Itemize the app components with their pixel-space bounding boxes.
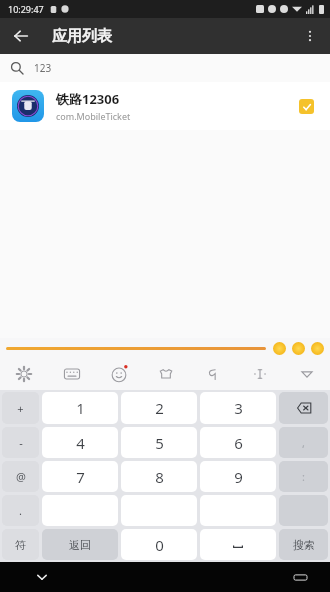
staticText: 0 xyxy=(155,535,164,555)
staticText: , xyxy=(302,435,305,450)
button[interactable]: 3 xyxy=(200,392,276,424)
staticText: com.MobileTicket xyxy=(56,110,131,122)
staticText: 10:29:47 xyxy=(8,3,44,15)
staticText: 9 xyxy=(234,467,243,487)
staticText: + xyxy=(17,401,24,416)
button[interactable]: Suggestion xyxy=(311,342,324,355)
button[interactable]: Selected xyxy=(294,94,318,118)
button[interactable]: Back xyxy=(6,21,36,51)
button[interactable]: . xyxy=(2,495,39,526)
button[interactable]: Space xyxy=(200,529,276,560)
button[interactable]: Text cursor xyxy=(246,360,274,388)
button[interactable]: 搜索 xyxy=(279,529,328,560)
button[interactable]: @ xyxy=(2,461,39,492)
button[interactable]: Emoji xyxy=(105,360,133,388)
button[interactable]: 铁路12306 xyxy=(0,82,330,130)
button[interactable]: 4 xyxy=(42,427,118,458)
staticText: 2 xyxy=(155,398,164,418)
button[interactable]: + xyxy=(2,392,39,424)
button[interactable]: Backspace xyxy=(279,392,328,424)
button[interactable]: 123 xyxy=(0,54,330,82)
button[interactable]: 1 xyxy=(42,392,118,424)
button[interactable]: 9 xyxy=(200,461,276,492)
staticText: 7 xyxy=(76,467,85,487)
staticText: : xyxy=(302,469,305,484)
button[interactable]: Suggestion xyxy=(273,342,286,355)
staticText: 应用列表 xyxy=(52,27,112,46)
staticText: - xyxy=(19,435,23,450)
button[interactable]: Settings xyxy=(10,360,38,388)
staticText: . xyxy=(19,503,22,518)
staticText: 铁路12306 xyxy=(56,90,120,108)
staticText: 8 xyxy=(155,467,164,487)
button[interactable]: 返回 xyxy=(42,529,118,560)
button[interactable]: More options xyxy=(294,20,326,52)
button[interactable]: 符 xyxy=(2,529,39,560)
staticText: 符 xyxy=(15,538,26,552)
staticText: 1 xyxy=(76,398,85,418)
button[interactable]: Hide keyboard xyxy=(293,360,321,388)
staticText: 返回 xyxy=(69,538,91,552)
staticText: 123 xyxy=(34,61,52,75)
button[interactable]: - xyxy=(2,427,39,458)
staticText: 6 xyxy=(234,433,243,453)
button[interactable]: Suggestion xyxy=(292,342,305,355)
button[interactable]: Keyboard layout xyxy=(58,360,86,388)
button[interactable]: Handwriting xyxy=(199,360,227,388)
staticText: 搜索 xyxy=(293,538,315,552)
staticText: 3 xyxy=(234,398,243,418)
button[interactable]: 7 xyxy=(42,461,118,492)
button[interactable]: 2 xyxy=(121,392,197,424)
staticText: 4 xyxy=(76,433,85,453)
staticText: @ xyxy=(16,469,26,484)
button[interactable]: 8 xyxy=(121,461,197,492)
button[interactable]: 5 xyxy=(121,427,197,458)
staticText: 5 xyxy=(155,433,164,453)
button[interactable]: 6 xyxy=(200,427,276,458)
button[interactable]: Theme xyxy=(152,360,180,388)
button[interactable]: Switch keyboard xyxy=(288,565,312,589)
button[interactable]: Hide keyboard xyxy=(30,565,54,589)
button[interactable]: 0 xyxy=(121,529,197,560)
